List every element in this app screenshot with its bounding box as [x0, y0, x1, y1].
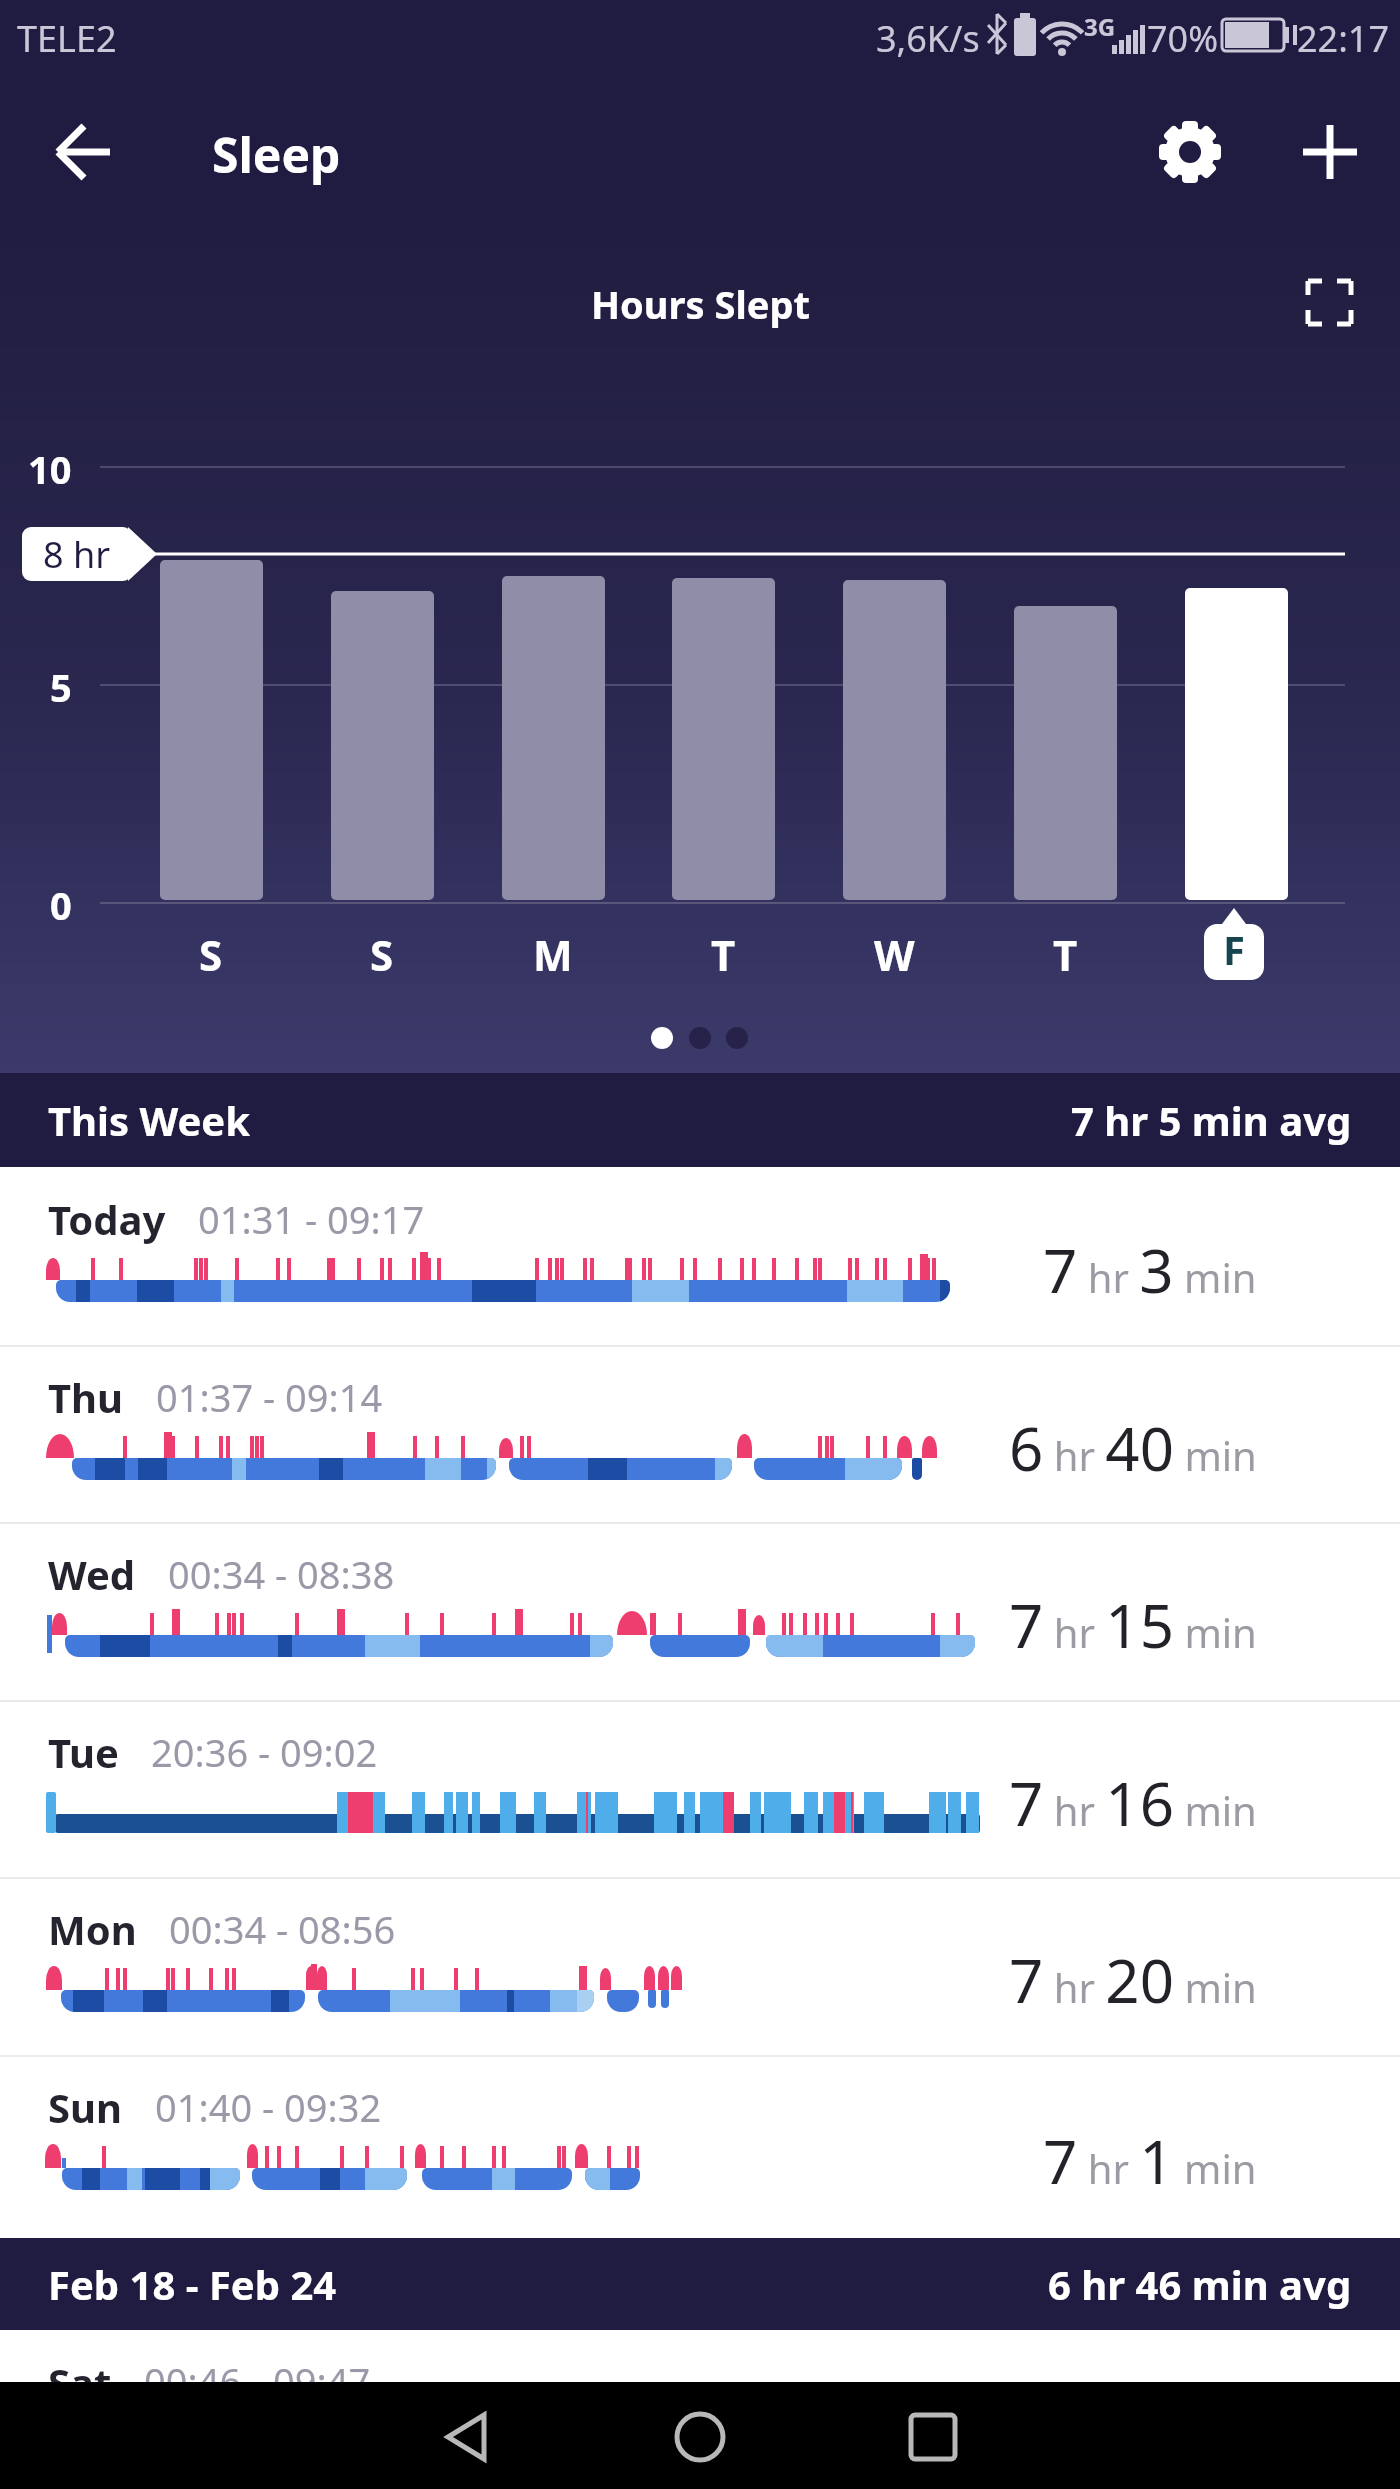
staticText: 6 hr 40 min	[1009, 1407, 1257, 1489]
button[interactable]: Feb 18 - Feb 24	[0, 2238, 1400, 2330]
button[interactable]: Thu	[0, 1345, 1400, 1522]
button[interactable]: Today	[0, 1167, 1400, 1345]
button[interactable]: This Week	[0, 1073, 1400, 1167]
staticText: Feb 18 - Feb 24	[48, 2257, 337, 2311]
staticText: F	[1223, 922, 1245, 976]
staticText: W	[874, 926, 915, 983]
staticText: S	[370, 926, 394, 983]
button[interactable]: Mon	[0, 1877, 1400, 2055]
staticText: 7 hr 1 min	[1043, 2120, 1257, 2202]
staticText: 01:31 - 09:17	[198, 1193, 425, 1245]
staticText: Sat	[48, 2355, 112, 2407]
staticText: 8 hr	[43, 530, 111, 579]
button[interactable]: F	[1174, 918, 1294, 980]
button[interactable]	[1288, 110, 1372, 194]
staticText: 00:46 - 09:47	[144, 2355, 371, 2407]
staticText: 6 hr 46 min avg	[1048, 2257, 1352, 2311]
staticText: 0	[50, 879, 72, 931]
staticText: 70%	[1147, 14, 1219, 63]
button[interactable]	[1148, 110, 1232, 194]
staticText: This Week	[48, 1093, 250, 1147]
staticText: 10	[28, 443, 72, 495]
button[interactable]	[420, 2390, 540, 2482]
staticText: Today	[48, 1192, 166, 1246]
staticText: 00:34 - 08:38	[168, 1548, 395, 1600]
staticText: 5	[50, 661, 72, 713]
staticText: M	[533, 926, 573, 983]
staticText: S	[199, 926, 223, 983]
staticText: Thu	[48, 1370, 124, 1424]
button[interactable]	[40, 112, 124, 196]
staticText: 01:37 - 09:14	[156, 1371, 383, 1423]
staticText: Tue	[48, 1725, 119, 1779]
staticText: 7 hr 16 min	[1009, 1762, 1257, 1844]
staticText: Sun	[48, 2080, 123, 2134]
staticText: 3G	[1084, 10, 1116, 43]
staticText: Sleep	[212, 122, 341, 187]
staticText: 01:40 - 09:32	[155, 2081, 382, 2133]
staticText: TELE2	[17, 14, 117, 63]
staticText: Mon	[48, 1902, 137, 1956]
button[interactable]: Wed	[0, 1522, 1400, 1700]
staticText: T	[711, 926, 736, 983]
staticText: 00:34 - 08:56	[169, 1903, 396, 1955]
staticText: 22:17	[1297, 14, 1390, 63]
staticText: Hours Slept	[591, 278, 810, 330]
staticText: Wed	[48, 1547, 136, 1601]
button[interactable]: Sun	[0, 2055, 1400, 2238]
staticText: 20:36 - 09:02	[151, 1726, 378, 1778]
staticText: T	[1053, 926, 1078, 983]
button[interactable]	[1290, 264, 1370, 344]
staticText: 7 hr 3 min	[1043, 1229, 1257, 1311]
button[interactable]	[640, 2390, 760, 2482]
button[interactable]: Sat	[0, 2330, 1400, 2382]
staticText: 7 hr 5 min avg	[1071, 1093, 1352, 1147]
staticText: 3,6K/s	[876, 14, 980, 63]
button[interactable]	[873, 2390, 993, 2482]
staticText: 7 hr 15 min	[1009, 1584, 1257, 1666]
button[interactable]: Tue	[0, 1700, 1400, 1877]
staticText: 7 hr 20 min	[1009, 1939, 1257, 2021]
